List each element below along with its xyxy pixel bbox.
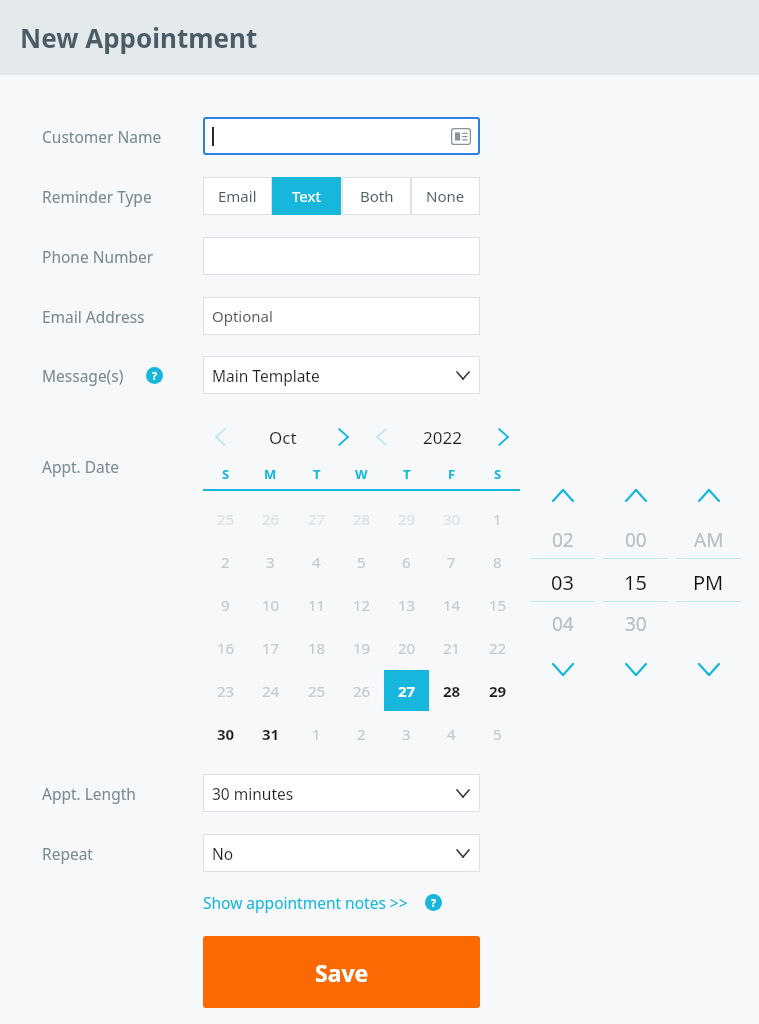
button[interactable]: Email [203, 177, 272, 215]
button[interactable]: 15 [475, 583, 520, 626]
button[interactable]: Optional [203, 297, 480, 335]
staticText: Optional [212, 306, 273, 326]
staticText: S [222, 465, 230, 483]
button[interactable]: Help [146, 367, 163, 384]
staticText: Email [218, 186, 257, 206]
button[interactable] [203, 237, 480, 275]
button[interactable]: 24 [248, 669, 293, 712]
button[interactable]: Decrease [672, 657, 745, 681]
button[interactable]: 12 [339, 583, 384, 626]
button[interactable]: 8 [475, 540, 520, 583]
button[interactable]: Save [203, 936, 480, 1008]
staticText: 1 [312, 724, 321, 744]
staticText: 3 [402, 724, 411, 744]
staticText: S [494, 465, 502, 483]
button[interactable]: 14 [429, 583, 474, 626]
staticText: 30 [443, 509, 461, 529]
staticText: F [448, 465, 456, 483]
button[interactable]: 13 [384, 583, 429, 626]
button[interactable]: 25 [294, 669, 339, 712]
button[interactable]: 2 [203, 540, 248, 583]
staticText: 22 [489, 638, 507, 658]
button[interactable]: 3 [384, 712, 429, 755]
staticText: 21 [443, 638, 461, 658]
button[interactable]: 18 [294, 626, 339, 669]
staticText: 28 [443, 681, 461, 701]
button[interactable]: 28 [429, 669, 474, 712]
staticText: ? [431, 896, 437, 910]
button[interactable]: 17 [248, 626, 293, 669]
button[interactable]: Show appointment notes >> [203, 890, 408, 915]
button[interactable]: 30 [203, 712, 248, 755]
button[interactable]: Help [425, 894, 442, 911]
button[interactable] [203, 117, 480, 155]
button[interactable]: 2 [339, 712, 384, 755]
button[interactable]: 27 [384, 669, 429, 712]
staticText: 2 [357, 724, 366, 744]
button[interactable]: 2022 [402, 425, 482, 450]
staticText: 24 [262, 681, 280, 701]
button[interactable]: 23 [203, 669, 248, 712]
button[interactable]: 22 [475, 626, 520, 669]
button[interactable]: 7 [429, 540, 474, 583]
staticText: Text [292, 186, 321, 206]
button[interactable]: 28 [339, 497, 384, 540]
staticText: Oct [269, 426, 297, 449]
button[interactable]: No [203, 834, 480, 872]
button[interactable]: 26 [248, 497, 293, 540]
staticText: 4 [312, 552, 321, 572]
button[interactable]: 5 [475, 712, 520, 755]
button[interactable]: 25 [203, 497, 248, 540]
button[interactable]: Increase [526, 483, 599, 507]
button[interactable]: 29 [384, 497, 429, 540]
button[interactable]: Increase [672, 483, 745, 507]
button[interactable]: Both [342, 177, 411, 215]
button[interactable]: Decrease [526, 657, 599, 681]
button[interactable]: PM [672, 566, 745, 598]
button[interactable]: 1 [294, 712, 339, 755]
button[interactable]: 30 [429, 497, 474, 540]
staticText: 23 [217, 681, 235, 701]
staticText: Both [360, 186, 394, 206]
button[interactable]: 16 [203, 626, 248, 669]
button[interactable]: Main Template [203, 356, 480, 394]
button[interactable]: 27 [294, 497, 339, 540]
button[interactable]: 21 [429, 626, 474, 669]
staticText: 8 [493, 552, 502, 572]
button[interactable]: 4 [294, 540, 339, 583]
button[interactable]: 10 [248, 583, 293, 626]
button[interactable]: Text [272, 177, 341, 215]
button[interactable]: 19 [339, 626, 384, 669]
button[interactable]: 11 [294, 583, 339, 626]
button[interactable]: Decrease [599, 657, 672, 681]
staticText: T [313, 465, 321, 483]
button[interactable]: Increase [599, 483, 672, 507]
staticText: 27 [398, 681, 416, 701]
staticText: 26 [262, 509, 280, 529]
staticText: 5 [493, 724, 502, 744]
button[interactable]: 6 [384, 540, 429, 583]
button[interactable]: 15 [599, 566, 672, 598]
button[interactable]: 03 [526, 566, 599, 598]
button[interactable]: 1 [475, 497, 520, 540]
button[interactable]: 26 [339, 669, 384, 712]
button[interactable]: 9 [203, 583, 248, 626]
button[interactable]: 3 [248, 540, 293, 583]
button[interactable]: 31 [248, 712, 293, 755]
staticText: 13 [398, 595, 416, 615]
staticText: Phone Number [42, 246, 154, 267]
staticText: M [264, 465, 277, 483]
button[interactable]: 20 [384, 626, 429, 669]
button[interactable]: 4 [429, 712, 474, 755]
staticText: 5 [357, 552, 366, 572]
staticText: 2 [221, 552, 230, 572]
button[interactable]: 29 [475, 669, 520, 712]
staticText: Email Address [42, 306, 145, 327]
button[interactable]: 30 minutes [203, 774, 480, 812]
button[interactable]: Oct [243, 425, 323, 450]
staticText: T [403, 465, 411, 483]
button[interactable]: 5 [339, 540, 384, 583]
button[interactable]: None [411, 177, 480, 215]
button[interactable]: Choose contact [451, 128, 471, 145]
staticText: 30 minutes [212, 783, 294, 804]
